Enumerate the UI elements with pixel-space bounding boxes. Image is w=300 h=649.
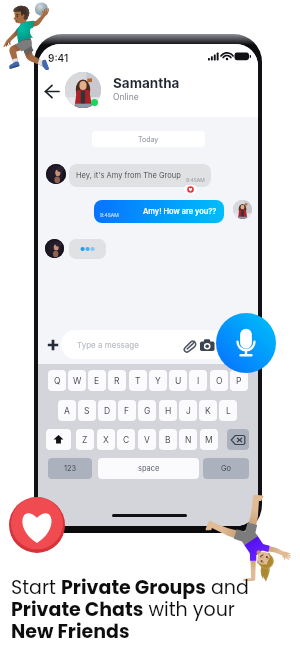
button[interactable]: Camera bbox=[197, 335, 217, 355]
button[interactable]: P bbox=[230, 370, 248, 391]
button[interactable]: Record voice message bbox=[216, 313, 276, 373]
button[interactable]: J bbox=[179, 400, 197, 421]
staticText: H bbox=[165, 406, 172, 416]
staticText: Type a message bbox=[77, 340, 139, 350]
button[interactable]: Add bbox=[43, 335, 63, 355]
staticText: V bbox=[144, 435, 150, 445]
staticText: 9:41 bbox=[48, 52, 69, 64]
staticText: B bbox=[165, 435, 171, 445]
staticText: Samantha bbox=[113, 75, 180, 91]
staticText: P bbox=[236, 376, 242, 386]
staticText: D bbox=[104, 406, 111, 416]
staticText: T bbox=[135, 376, 141, 386]
staticText: R bbox=[114, 376, 120, 386]
button[interactable]: Shift bbox=[46, 429, 71, 450]
button[interactable]: R bbox=[108, 370, 126, 391]
button[interactable]: I bbox=[189, 370, 207, 391]
staticText: C bbox=[123, 435, 130, 445]
staticText: 9:45AM bbox=[186, 177, 205, 183]
staticText: Z bbox=[82, 435, 88, 445]
button[interactable]: S bbox=[78, 400, 96, 421]
button[interactable]: B bbox=[159, 429, 177, 450]
button[interactable]: D bbox=[98, 400, 116, 421]
button[interactable]: Q bbox=[48, 370, 66, 391]
staticText: L bbox=[226, 406, 231, 416]
button[interactable]: Y bbox=[149, 370, 167, 391]
button[interactable]: F bbox=[118, 400, 136, 421]
staticText: O bbox=[216, 376, 223, 386]
button[interactable] bbox=[65, 72, 101, 108]
staticText: 🤸🏼‍♀️ bbox=[199, 492, 298, 585]
staticText: G bbox=[144, 406, 151, 416]
staticText: W bbox=[73, 376, 82, 386]
button[interactable]: Backspace bbox=[227, 429, 249, 450]
button[interactable]: O bbox=[210, 370, 228, 391]
button[interactable]: Type a message bbox=[61, 330, 237, 359]
staticText: Amy! How are you?? bbox=[143, 207, 217, 216]
button[interactable]: L bbox=[219, 400, 237, 421]
button[interactable]: A bbox=[58, 400, 76, 421]
button[interactable]: G bbox=[138, 400, 156, 421]
staticText: Start Private Groups and Private Chats w… bbox=[11, 574, 249, 645]
staticText: F bbox=[124, 406, 130, 416]
staticText: Today bbox=[138, 135, 159, 143]
staticText: Hey, it's Amy from The Group bbox=[76, 171, 181, 180]
staticText: Y bbox=[155, 376, 161, 386]
staticText: J bbox=[186, 406, 191, 416]
button[interactable]: Back bbox=[42, 81, 63, 102]
button[interactable]: H bbox=[159, 400, 177, 421]
button[interactable]: Z bbox=[76, 429, 94, 450]
staticText: M bbox=[205, 435, 213, 445]
staticText: I bbox=[197, 376, 200, 386]
staticText: A bbox=[64, 406, 70, 416]
button[interactable]: U bbox=[169, 370, 187, 391]
staticText: K bbox=[205, 406, 211, 416]
staticText: 9:45AM bbox=[100, 212, 119, 218]
button[interactable]: N bbox=[179, 429, 197, 450]
staticText: S bbox=[84, 406, 90, 416]
button[interactable]: V bbox=[138, 429, 156, 450]
button[interactable]: Go bbox=[203, 458, 249, 479]
staticText: Q bbox=[54, 376, 61, 386]
staticText: Go bbox=[221, 464, 232, 473]
staticText: space bbox=[138, 464, 160, 473]
staticText: E bbox=[94, 376, 100, 386]
button[interactable]: C bbox=[117, 429, 135, 450]
button[interactable]: Attach file bbox=[180, 335, 200, 355]
button[interactable]: 123 bbox=[48, 458, 92, 479]
staticText: Online bbox=[113, 92, 139, 102]
button[interactable]: M bbox=[200, 429, 218, 450]
button[interactable]: Hey, it's Amy from The Group bbox=[69, 164, 211, 187]
staticText: U bbox=[175, 376, 182, 386]
button[interactable]: W bbox=[68, 370, 86, 391]
staticText: N bbox=[185, 435, 192, 445]
button[interactable]: X bbox=[97, 429, 115, 450]
button[interactable]: K bbox=[199, 400, 217, 421]
staticText: 123 bbox=[64, 464, 77, 473]
button[interactable]: space bbox=[98, 458, 199, 479]
staticText: 🤾🏾‍♂️ bbox=[0, 0, 64, 73]
button[interactable]: 9:45AM bbox=[94, 200, 224, 223]
button[interactable]: E bbox=[88, 370, 106, 391]
staticText: X bbox=[103, 435, 109, 445]
button[interactable]: T bbox=[129, 370, 147, 391]
